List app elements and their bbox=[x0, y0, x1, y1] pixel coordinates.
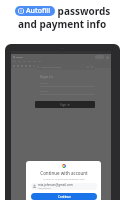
staticText: Continue bbox=[58, 195, 71, 199]
staticText: Sign in bbox=[60, 103, 70, 107]
staticText: Sign in bbox=[40, 74, 53, 79]
button[interactable]: mia.johnson@gmail.com bbox=[32, 183, 97, 190]
staticText: Continue with account bbox=[40, 170, 88, 176]
staticText: mia.johnson@gmail.com bbox=[38, 183, 73, 187]
staticText: Autofill bbox=[26, 6, 51, 16]
button[interactable]: Sign in bbox=[35, 101, 95, 108]
staticText: to sign in to accounts.example.com bbox=[43, 177, 85, 180]
button[interactable]: Autofill bbox=[18, 6, 51, 16]
staticText: passwords bbox=[55, 4, 111, 18]
staticText: Mia Johnson bbox=[38, 187, 51, 190]
button[interactable]: Continue bbox=[31, 193, 97, 200]
staticText: and payment info bbox=[18, 17, 107, 31]
